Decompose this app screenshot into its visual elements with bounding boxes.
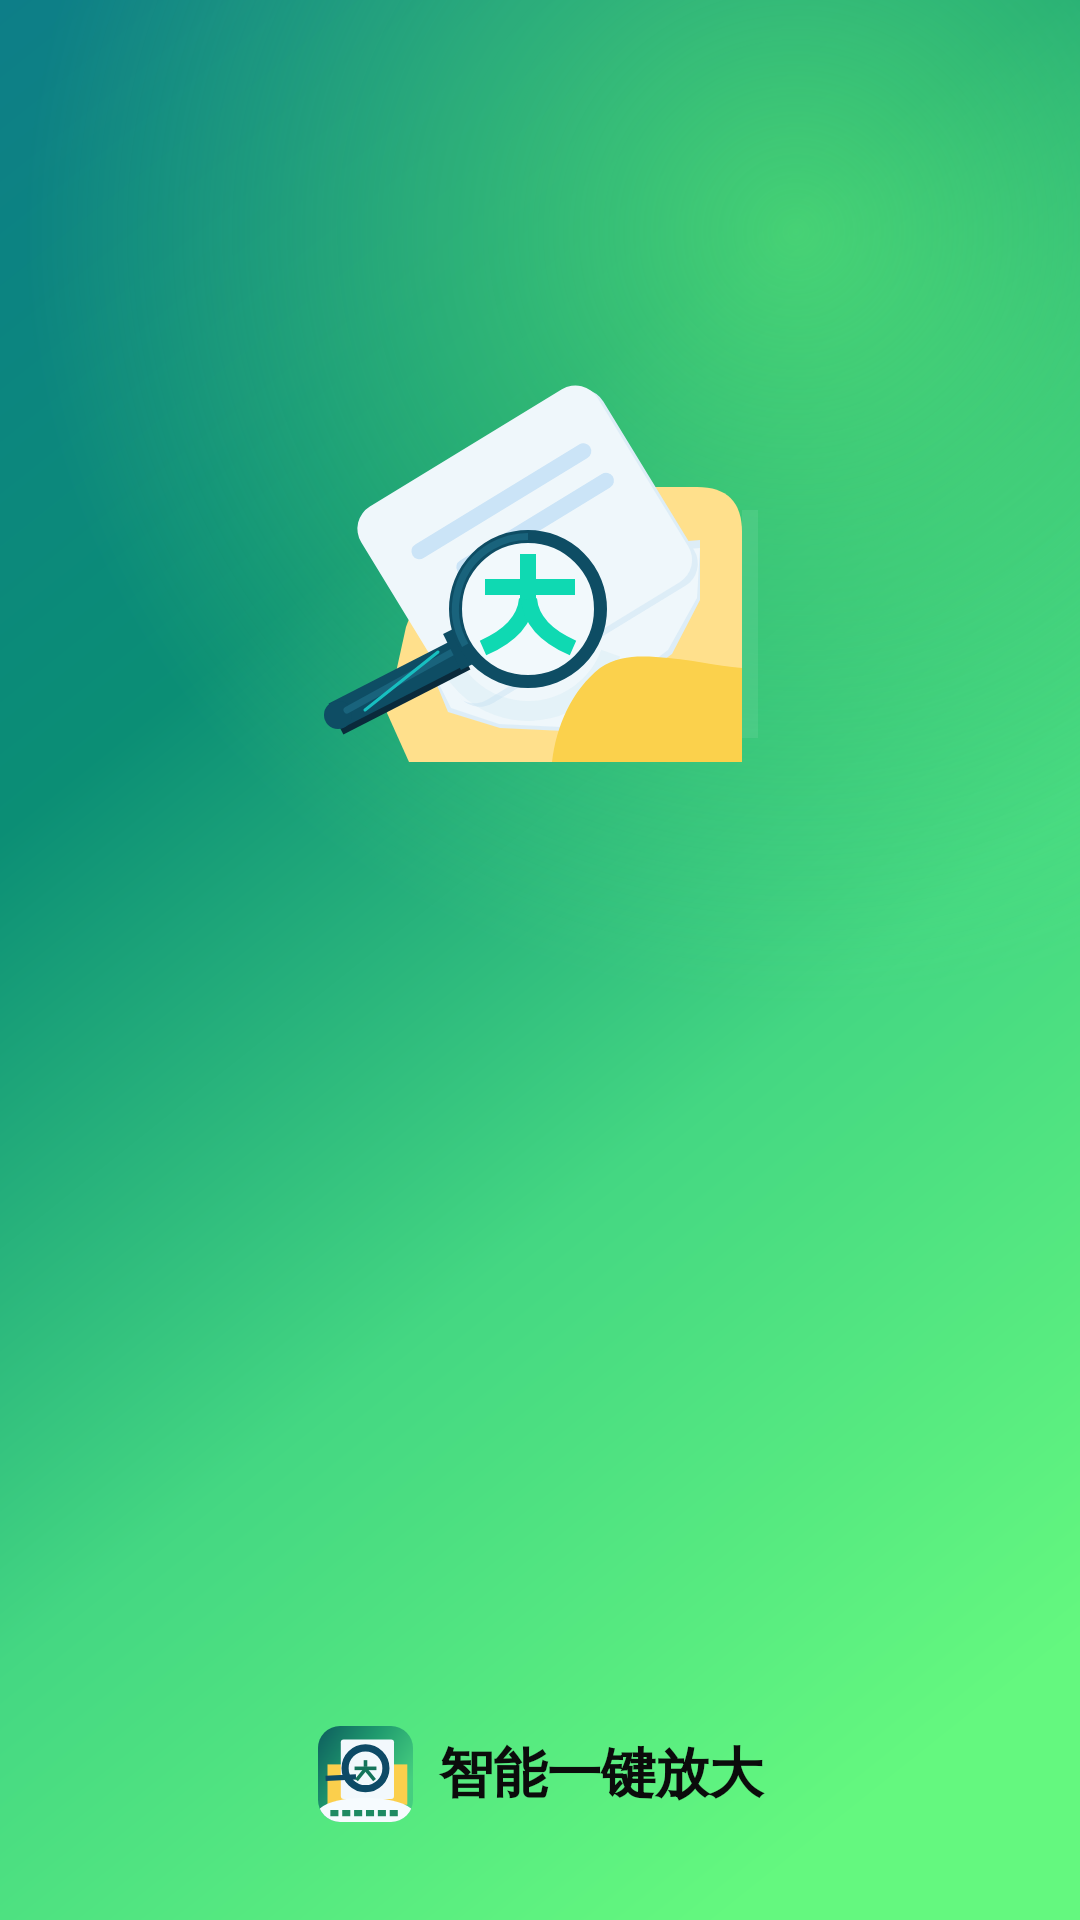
- staticText: 智能一键放大: [439, 1740, 763, 1808]
- button[interactable]: App icon: [318, 1726, 413, 1822]
